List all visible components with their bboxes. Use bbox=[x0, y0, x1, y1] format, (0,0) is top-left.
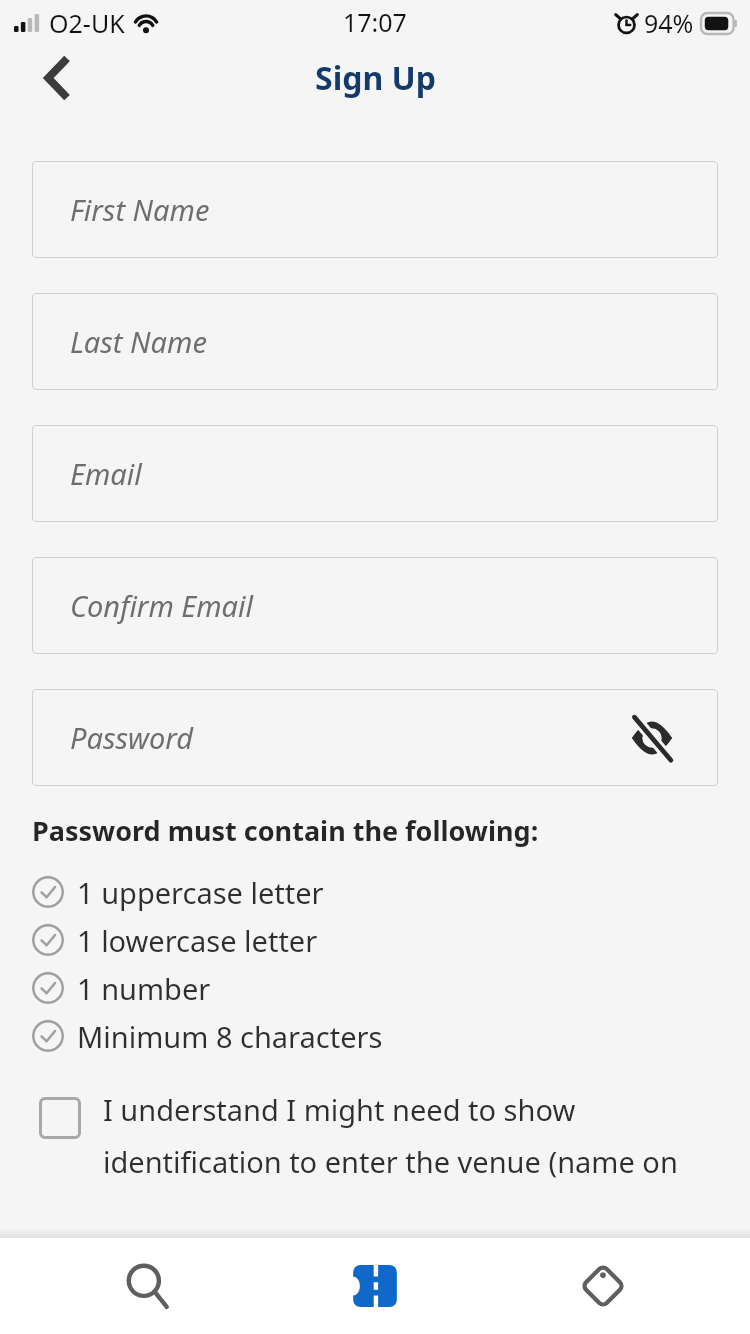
button[interactable]: I understand checkbox bbox=[39, 1090, 710, 1181]
button[interactable]: Last Name bbox=[32, 293, 718, 390]
button[interactable]: Search bbox=[68, 1238, 228, 1334]
button[interactable]: 1 number bbox=[32, 964, 718, 1012]
staticText: Email bbox=[70, 454, 142, 493]
staticText: Password bbox=[70, 718, 194, 757]
staticText: 94% bbox=[644, 6, 694, 40]
button[interactable]: 1 uppercase letter bbox=[32, 868, 718, 916]
staticText: Password must contain the following: bbox=[32, 812, 539, 849]
staticText: First Name bbox=[70, 190, 210, 229]
staticText: 1 number bbox=[77, 969, 211, 1008]
button[interactable]: Tickets bbox=[295, 1238, 455, 1334]
staticText: Last Name bbox=[70, 322, 207, 361]
other: I understand checkbox bbox=[39, 1097, 81, 1139]
staticText: 1 uppercase letter bbox=[77, 873, 324, 912]
button[interactable]: 1 lowercase letter bbox=[32, 916, 718, 964]
button[interactable]: Confirm Email bbox=[32, 557, 718, 654]
button[interactable]: Back bbox=[24, 46, 88, 110]
button[interactable]: Email bbox=[32, 425, 718, 522]
button[interactable]: First Name bbox=[32, 161, 718, 258]
staticText: 1 lowercase letter bbox=[77, 921, 318, 960]
button[interactable]: Offers bbox=[523, 1238, 683, 1334]
button[interactable]: Minimum 8 characters bbox=[32, 1012, 718, 1060]
button[interactable]: Password bbox=[32, 689, 718, 786]
button[interactable]: Show password bbox=[624, 710, 680, 766]
staticText: Confirm Email bbox=[70, 586, 254, 625]
staticText: 17:07 bbox=[343, 5, 407, 39]
staticText: O2-UK bbox=[49, 6, 125, 40]
staticText: Minimum 8 characters bbox=[77, 1017, 383, 1056]
staticText: Sign Up bbox=[315, 56, 436, 100]
staticText: I understand I might need to show identi… bbox=[103, 1090, 710, 1181]
